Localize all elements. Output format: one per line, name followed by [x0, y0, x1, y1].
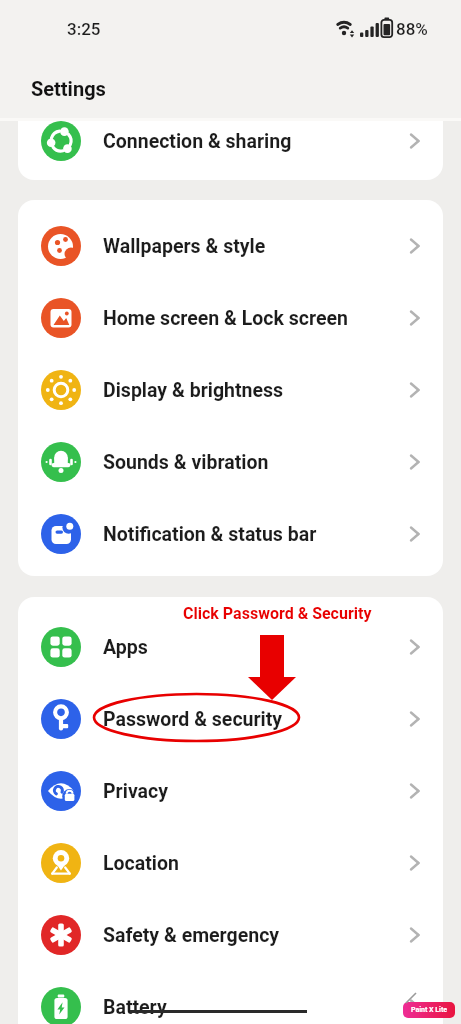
button[interactable]: Battery [18, 971, 443, 1024]
button[interactable]: Sounds & vibration [18, 426, 443, 498]
button[interactable]: Apps [18, 611, 443, 683]
staticText: Display & brightness [103, 379, 284, 402]
staticText: Safety & emergency [103, 924, 280, 947]
staticText: Notification & status bar [103, 523, 317, 546]
staticText: 3:25 [67, 19, 101, 39]
button[interactable]: Wallpapers & style [18, 210, 443, 282]
staticText: Connection & sharing [103, 130, 292, 153]
button[interactable]: Location [18, 827, 443, 899]
button[interactable]: Safety & emergency [18, 899, 443, 971]
staticText: Privacy [103, 780, 169, 803]
button[interactable]: Home screen & Lock screen [18, 282, 443, 354]
staticText: Click Password & Security [183, 604, 372, 623]
button[interactable]: Privacy [18, 755, 443, 827]
button[interactable]: Display & brightness [18, 354, 443, 426]
button[interactable]: Notification & status bar [18, 498, 443, 570]
staticText: Sounds & vibration [103, 451, 269, 474]
staticText: Settings [31, 77, 106, 100]
staticText: Apps [103, 636, 148, 659]
staticText: Home screen & Lock screen [103, 307, 348, 330]
staticText: Battery [103, 996, 167, 1019]
staticText: Paint X Lite [411, 1006, 448, 1014]
staticText: Location [103, 852, 179, 875]
button[interactable]: Connection & sharing [18, 105, 443, 177]
staticText: Wallpapers & style [103, 235, 266, 258]
button[interactable]: Password & security [18, 683, 443, 755]
staticText: 88% [396, 19, 428, 39]
staticText: Password & security [103, 708, 283, 731]
